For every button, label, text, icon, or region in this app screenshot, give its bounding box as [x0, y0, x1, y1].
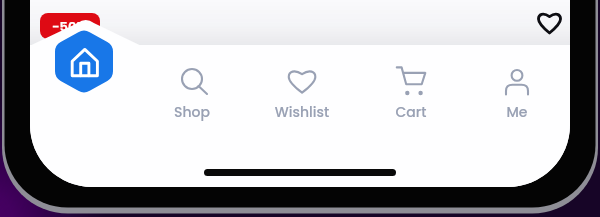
button[interactable]: Shop [156, 58, 228, 124]
staticText: Cart [375, 102, 447, 122]
staticText: -50% [52, 17, 88, 35]
button[interactable]: Cart [375, 58, 447, 124]
button[interactable]: Add to favourites [532, 6, 566, 40]
button[interactable]: Home [55, 29, 113, 94]
staticText: Me [481, 102, 553, 122]
staticText: Wishlist [266, 102, 338, 122]
staticText: Shop [156, 102, 228, 122]
button[interactable]: Me [481, 58, 553, 124]
button[interactable]: Wishlist [266, 58, 338, 124]
